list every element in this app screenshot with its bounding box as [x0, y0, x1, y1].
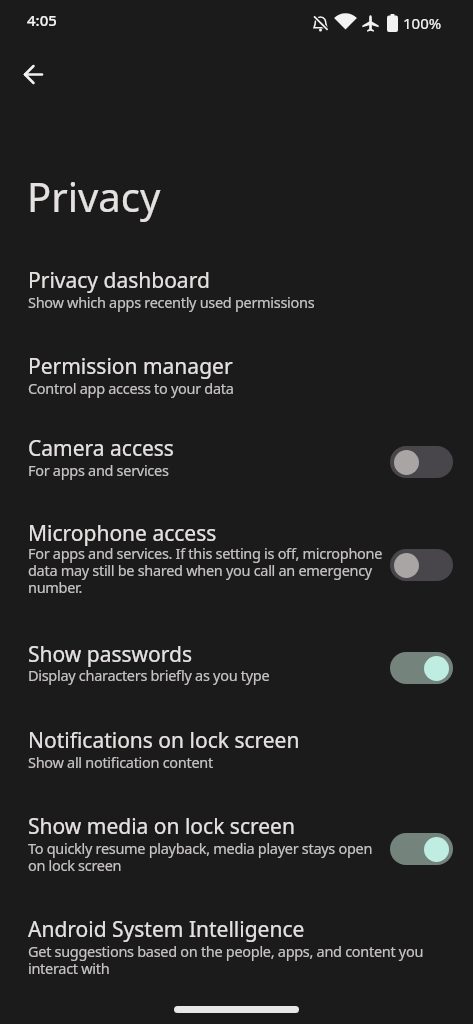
staticText: Privacy dashboard	[28, 266, 210, 295]
staticText: Privacy	[27, 169, 161, 223]
button[interactable]: Permission manager	[0, 338, 473, 408]
staticText: For apps and services	[28, 460, 463, 480]
staticText: For apps and services. If this setting i…	[28, 543, 463, 597]
staticText: Show passwords	[28, 640, 193, 669]
button[interactable]: Android System Intelligence	[0, 901, 473, 989]
staticText: Show all notification content	[28, 752, 463, 772]
button[interactable]: Show passwords	[0, 626, 473, 695]
staticText: Control app access to your data	[28, 378, 463, 398]
button[interactable]	[13, 54, 53, 94]
staticText: Camera access	[28, 434, 174, 463]
button[interactable]: Show media on lock screen	[0, 798, 473, 886]
staticText: Get suggestions based on the people, app…	[28, 941, 463, 978]
button[interactable]: Notifications on lock screen	[0, 712, 473, 782]
staticText: Display characters briefly as you type	[28, 665, 463, 685]
staticText: Notifications on lock screen	[28, 726, 300, 755]
staticText: 100%	[403, 13, 442, 33]
button[interactable]: Microphone access	[0, 505, 473, 609]
staticText: Permission manager	[28, 352, 233, 381]
staticText: Android System Intelligence	[28, 915, 305, 944]
staticText: To quickly resume playback, media player…	[28, 838, 463, 875]
button[interactable]: Camera access	[0, 420, 473, 490]
button[interactable]: Privacy dashboard	[0, 252, 473, 322]
staticText: Show media on lock screen	[28, 812, 295, 841]
staticText: Show which apps recently used permission…	[28, 292, 463, 312]
staticText: 4:05	[27, 10, 57, 30]
staticText: Microphone access	[28, 519, 217, 548]
